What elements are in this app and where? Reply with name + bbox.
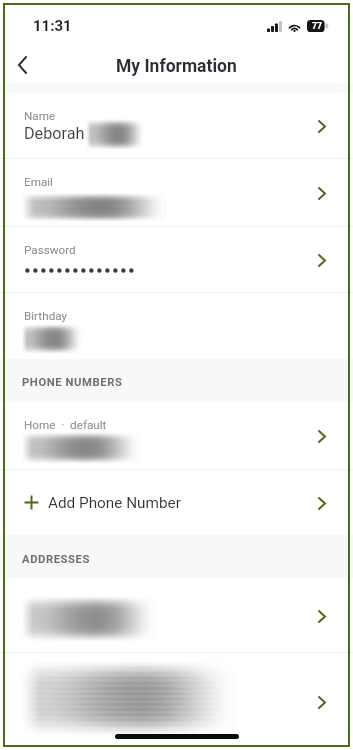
staticText: Add Phone Number bbox=[48, 494, 310, 512]
staticText: Birthday bbox=[24, 309, 68, 323]
staticText: Password bbox=[24, 243, 76, 257]
staticText: Home · default bbox=[24, 418, 107, 432]
staticText: 77 bbox=[312, 21, 322, 31]
button[interactable]: Password bbox=[0, 227, 353, 292]
button[interactable]: Open bbox=[310, 424, 334, 448]
button[interactable]: Open bbox=[310, 604, 334, 628]
button[interactable]: Add Phone Number bbox=[0, 470, 353, 535]
button[interactable]: Email bbox=[0, 159, 353, 226]
button[interactable]: Open bbox=[310, 114, 334, 138]
button[interactable]: Open bbox=[310, 491, 334, 515]
staticText: PHONE NUMBERS bbox=[22, 376, 123, 389]
button[interactable]: Open bbox=[310, 248, 334, 272]
staticText: Name bbox=[24, 109, 56, 123]
button[interactable]: Open bbox=[0, 579, 353, 652]
button[interactable]: Back bbox=[3, 46, 41, 84]
staticText: My Information bbox=[116, 56, 237, 77]
staticText: 11:31 bbox=[33, 17, 72, 35]
staticText: Email bbox=[24, 175, 53, 189]
button[interactable]: Open bbox=[0, 653, 353, 750]
button[interactable]: Birthday bbox=[0, 293, 353, 359]
staticText: ADDRESSES bbox=[22, 553, 91, 566]
button[interactable]: Name bbox=[0, 93, 353, 158]
button[interactable]: Open bbox=[310, 181, 334, 205]
button[interactable]: Home · default bbox=[0, 402, 353, 469]
button[interactable]: Open bbox=[310, 690, 334, 714]
staticText: Deborah bbox=[24, 124, 85, 143]
